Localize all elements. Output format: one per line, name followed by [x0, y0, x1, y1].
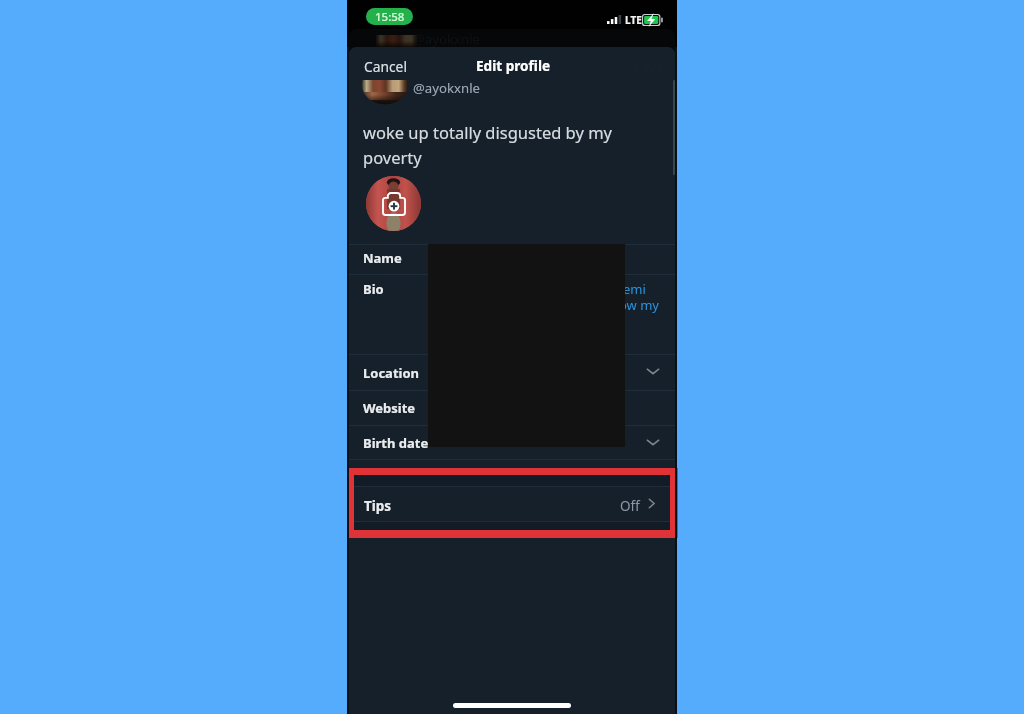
staticText: Website	[363, 399, 416, 417]
button[interactable]: Tips	[354, 475, 670, 530]
button[interactable]: Change profile photo	[366, 176, 421, 231]
staticText: Tips	[364, 497, 392, 515]
staticText: Bio	[363, 280, 384, 298]
button[interactable]: Cancel	[356, 53, 415, 80]
staticText: emi	[623, 280, 646, 298]
staticText: Name	[363, 249, 402, 267]
button[interactable]: Name	[347, 244, 677, 274]
staticText: 15:58	[375, 9, 405, 25]
staticText: Location	[363, 364, 419, 382]
staticText: Cancel	[364, 57, 407, 76]
button[interactable]: Bio	[347, 274, 677, 354]
staticText: @ayokxnle	[413, 30, 480, 48]
staticText: ow my	[619, 296, 659, 314]
button[interactable]: Website	[347, 390, 677, 425]
button[interactable]: Location	[347, 354, 677, 390]
staticText: Edit profile	[476, 56, 551, 75]
button[interactable]: Birth date	[347, 425, 677, 459]
staticText: woke up totally disgusted by my	[363, 121, 612, 143]
staticText: poverty	[363, 146, 422, 168]
staticText: Off	[620, 497, 640, 515]
staticText: @ayokxnle	[413, 79, 480, 97]
staticText: LTE	[625, 13, 642, 27]
staticText: Birth date	[363, 434, 429, 452]
